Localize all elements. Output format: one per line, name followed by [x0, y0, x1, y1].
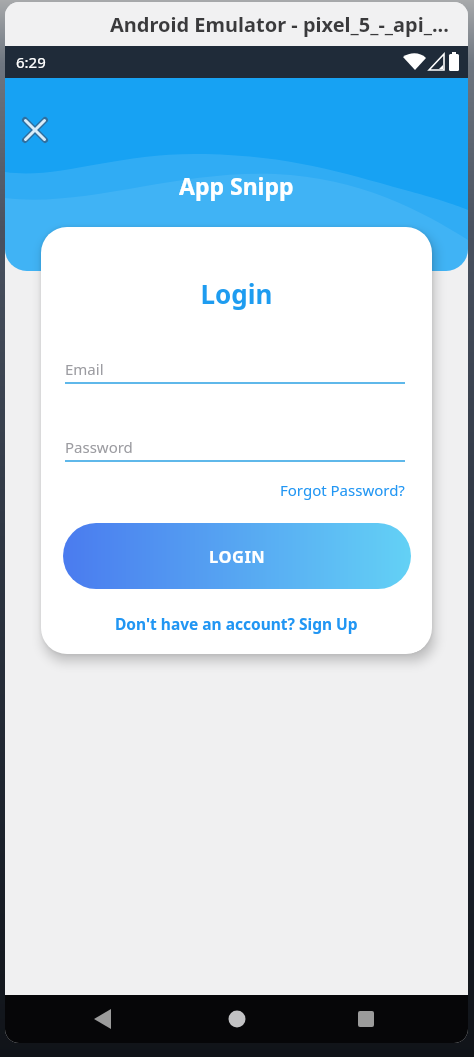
staticText: 6:29 [16, 52, 46, 72]
staticText: Password [65, 437, 133, 457]
button[interactable]: Password [65, 437, 405, 462]
button[interactable]: Don't have an account? Sign Up [115, 613, 358, 634]
button[interactable]: LOGIN [63, 523, 411, 589]
staticText: App Snipp [179, 170, 294, 201]
staticText: LOGIN [209, 545, 266, 567]
staticText: Email [65, 359, 104, 379]
button[interactable] [89, 1005, 117, 1033]
staticText: Android Emulator - pixel_5_-_api_... [110, 11, 449, 38]
button[interactable] [223, 1005, 251, 1033]
button[interactable] [352, 1005, 380, 1033]
button[interactable]: Forgot Password? [280, 480, 405, 500]
button[interactable]: Email [65, 359, 405, 384]
button[interactable] [13, 108, 57, 152]
staticText: Login [41, 276, 432, 311]
